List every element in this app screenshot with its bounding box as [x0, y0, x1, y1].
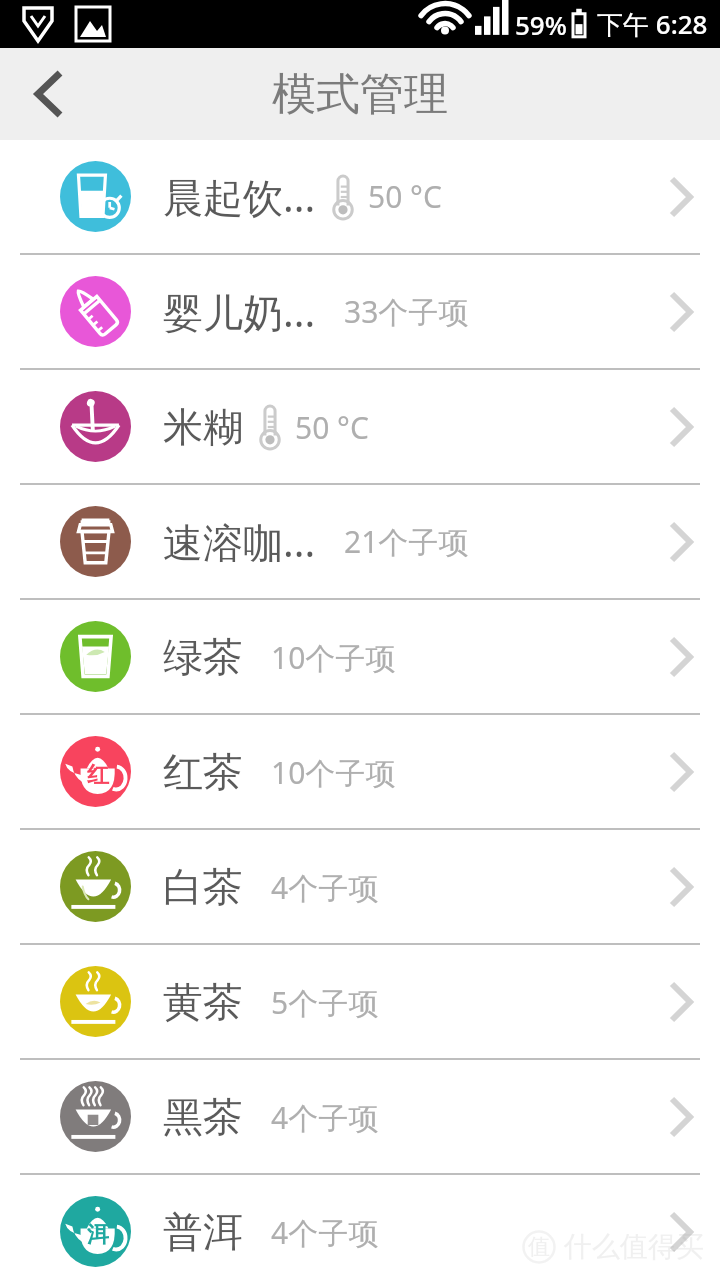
staticText: 4个子项: [271, 1212, 379, 1253]
staticText: 59%: [515, 7, 567, 42]
button[interactable]: 黑茶: [0, 1060, 720, 1173]
staticText: 10个子项: [271, 637, 396, 678]
staticText: 黄茶: [163, 977, 243, 1027]
button[interactable]: 米糊: [0, 370, 720, 483]
staticText: 下午 6:28: [597, 6, 708, 42]
staticText: 21个子项: [344, 521, 469, 562]
staticText: 婴儿奶...: [163, 284, 316, 339]
staticText: 晨起饮...: [163, 169, 316, 224]
button[interactable]: 洱: [0, 1175, 720, 1280]
staticText: 4个子项: [271, 867, 379, 908]
staticText: 红茶: [163, 747, 243, 797]
staticText: 洱: [87, 1221, 109, 1249]
button[interactable]: 婴儿奶...: [0, 255, 720, 368]
staticText: 红: [87, 761, 109, 789]
button[interactable]: 白茶: [0, 830, 720, 943]
staticText: 50 °C: [368, 176, 442, 217]
button[interactable]: Back: [0, 48, 92, 140]
staticText: 黑茶: [163, 1092, 243, 1142]
button[interactable]: 黄茶: [0, 945, 720, 1058]
staticText: 模式管理: [272, 67, 448, 122]
button[interactable]: 晨起饮...: [0, 140, 720, 253]
button[interactable]: 绿茶: [0, 600, 720, 713]
button[interactable]: 红: [0, 715, 720, 828]
staticText: 什么值得买: [564, 1229, 704, 1264]
staticText: 值: [528, 1233, 550, 1261]
staticText: 普洱: [163, 1207, 243, 1257]
staticText: 米糊: [163, 402, 243, 452]
staticText: 绿茶: [163, 632, 243, 682]
staticText: 10个子项: [271, 752, 396, 793]
staticText: 4个子项: [271, 1097, 379, 1138]
staticText: 5个子项: [271, 982, 379, 1023]
staticText: 50 °C: [295, 407, 369, 448]
staticText: 白茶: [163, 862, 243, 912]
button[interactable]: 速溶咖...: [0, 485, 720, 598]
staticText: 33个子项: [344, 291, 469, 332]
staticText: 速溶咖...: [163, 514, 316, 569]
